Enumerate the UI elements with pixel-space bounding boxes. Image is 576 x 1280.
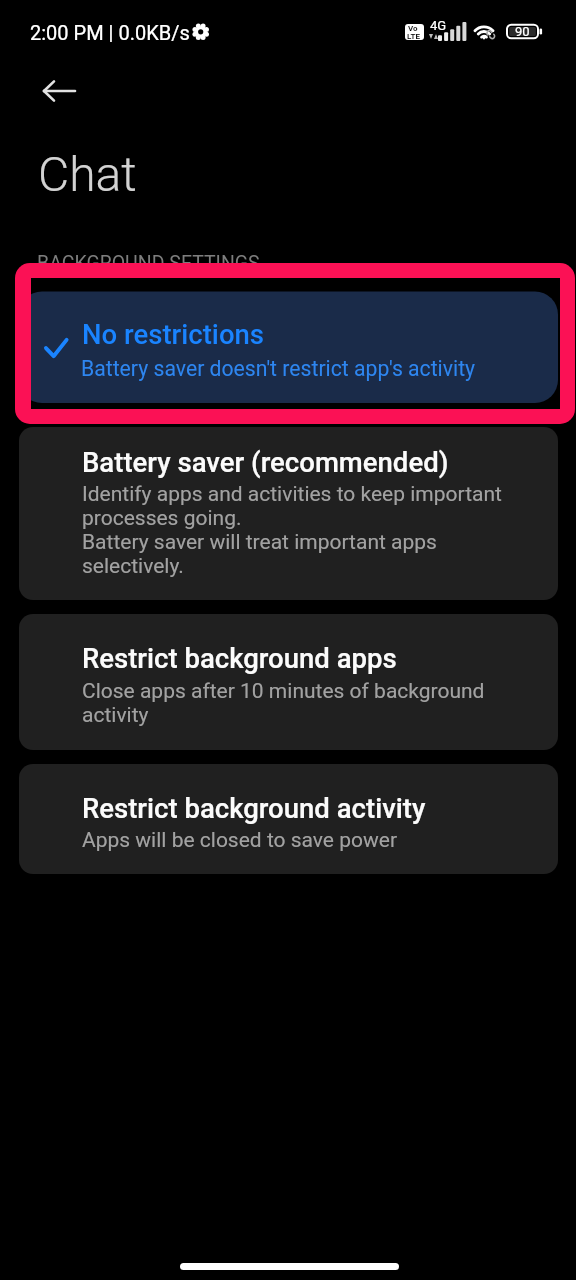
button[interactable]: Battery saver (recommended) [19, 427, 558, 600]
staticText: Battery saver (recommended) [82, 447, 449, 479]
button[interactable]: Restrict background apps [19, 614, 558, 750]
staticText: 4G [430, 19, 447, 33]
staticText: LTE [407, 32, 420, 40]
staticText: Apps will be closed to save power [82, 828, 398, 852]
staticText: Close apps after 10 minutes of backgroun… [82, 679, 485, 727]
staticText: Battery saver doesn't restrict app's act… [81, 356, 476, 381]
staticText: No restrictions [82, 318, 265, 351]
button[interactable]: Back [35, 67, 83, 115]
staticText: Restrict background apps [82, 643, 397, 675]
button[interactable]: Restrict background activity [19, 764, 558, 874]
button[interactable]: No restrictions [31, 292, 558, 403]
staticText: 90 [515, 25, 530, 39]
staticText: Vo [408, 24, 418, 33]
staticText: BACKGROUND SETTINGS [37, 251, 260, 275]
staticText: 2:00 PM | 0.0KB/s [30, 21, 190, 45]
staticText: Identify apps and activities to keep imp… [82, 482, 502, 578]
staticText: Chat [38, 147, 137, 203]
staticText: Restrict background activity [82, 793, 426, 825]
